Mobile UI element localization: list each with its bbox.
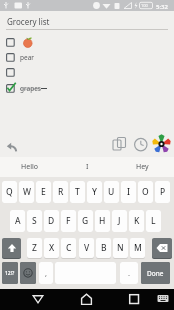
button[interactable]: I xyxy=(68,157,106,177)
button[interactable]: , xyxy=(39,262,53,284)
staticText: Done xyxy=(147,269,164,278)
button[interactable] xyxy=(133,136,149,153)
button[interactable]: Q xyxy=(2,181,17,203)
button[interactable]: S xyxy=(27,210,42,232)
button[interactable] xyxy=(111,136,129,153)
button[interactable]: L xyxy=(146,210,161,232)
staticText: Y xyxy=(92,186,97,198)
staticText: pear xyxy=(20,53,34,62)
staticText: A xyxy=(15,215,21,227)
staticText: R xyxy=(58,186,64,198)
button[interactable] xyxy=(78,291,95,307)
button[interactable]: Z xyxy=(27,238,42,258)
staticText: J xyxy=(118,215,121,227)
staticText: Grocery list xyxy=(7,16,50,27)
staticText: K xyxy=(134,215,140,227)
button[interactable] xyxy=(125,291,142,307)
button[interactable] xyxy=(20,262,36,284)
button[interactable] xyxy=(5,141,19,154)
button[interactable]: C xyxy=(61,238,76,258)
button[interactable]: J xyxy=(112,210,127,232)
staticText: B xyxy=(101,242,107,254)
staticText: M xyxy=(134,242,142,254)
staticText: W xyxy=(23,186,31,198)
button[interactable]: U xyxy=(104,181,119,203)
staticText: D xyxy=(48,215,55,227)
button[interactable]: X xyxy=(44,238,59,258)
staticText: 100 xyxy=(141,3,148,8)
staticText: C xyxy=(66,242,72,254)
button[interactable]: F xyxy=(61,210,76,232)
button[interactable]: V xyxy=(79,238,94,258)
button[interactable]: . xyxy=(120,262,138,284)
button[interactable]: grapes xyxy=(0,80,174,95)
button[interactable]: G xyxy=(78,210,93,232)
staticText: Z xyxy=(32,242,37,254)
button[interactable]: M xyxy=(130,238,145,258)
button[interactable]: E xyxy=(36,181,51,203)
button[interactable]: pear xyxy=(0,50,174,65)
button[interactable] xyxy=(0,65,174,80)
button[interactable] xyxy=(153,291,172,307)
staticText: Q xyxy=(6,186,13,198)
staticText: I xyxy=(86,162,89,172)
button[interactable]: N xyxy=(113,238,128,258)
staticText: S xyxy=(32,215,37,227)
staticText: U xyxy=(108,186,115,198)
staticText: . xyxy=(128,268,131,278)
staticText: G xyxy=(82,215,89,227)
staticText: X xyxy=(49,242,55,254)
staticText: L xyxy=(151,215,156,227)
button[interactable]: R xyxy=(53,181,68,203)
button[interactable]: D xyxy=(44,210,59,232)
staticText: T xyxy=(75,186,80,198)
staticText: P xyxy=(160,186,166,198)
button[interactable]: B xyxy=(96,238,111,258)
button[interactable]: A xyxy=(10,210,25,232)
staticText: , xyxy=(45,268,48,278)
staticText: V xyxy=(84,242,90,254)
staticText: O xyxy=(142,186,149,198)
staticText: F xyxy=(66,215,71,227)
button[interactable]: 12!? xyxy=(2,262,18,284)
button[interactable]: K xyxy=(129,210,144,232)
button[interactable] xyxy=(2,238,21,258)
staticText: E xyxy=(41,186,46,198)
button[interactable]: P xyxy=(155,181,170,203)
staticText: H xyxy=(99,215,106,227)
staticText: I xyxy=(127,186,131,198)
staticText: 12!? xyxy=(5,270,15,277)
button[interactable]: O xyxy=(138,181,153,203)
staticText: Hello xyxy=(21,162,38,172)
button[interactable]: Done xyxy=(141,262,170,284)
button[interactable]: T xyxy=(70,181,85,203)
staticText: Hey xyxy=(136,162,149,172)
button[interactable]: Hello xyxy=(10,157,48,177)
button[interactable]: W xyxy=(19,181,34,203)
staticText: grapes xyxy=(20,84,41,93)
staticText: 5:32 xyxy=(156,3,168,11)
button[interactable] xyxy=(152,238,172,258)
button[interactable]: Y xyxy=(87,181,102,203)
button[interactable] xyxy=(29,291,46,307)
staticText: N xyxy=(117,242,124,254)
button[interactable] xyxy=(151,133,171,153)
button[interactable]: Hey xyxy=(124,157,160,177)
button[interactable]: I xyxy=(121,181,136,203)
button[interactable] xyxy=(0,35,174,50)
button[interactable]: H xyxy=(95,210,110,232)
